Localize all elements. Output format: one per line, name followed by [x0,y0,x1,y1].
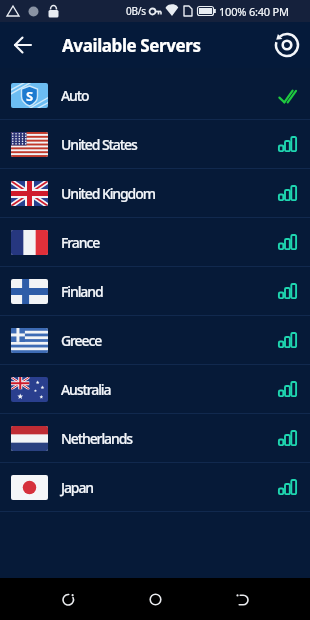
staticText: France [61,233,100,252]
staticText: S [26,87,34,105]
staticText: Netherlands [61,429,132,448]
staticText: United Kingdom [61,184,155,203]
button[interactable]: Netherlands [0,414,310,462]
button[interactable] [264,22,310,68]
button[interactable]: Finland [0,267,310,315]
staticText: Greece [61,331,102,350]
button[interactable] [0,22,46,68]
button[interactable]: France [0,218,310,266]
staticText: Auto [61,86,89,105]
staticText: 0B/s [126,4,146,18]
button[interactable] [24,578,112,620]
button[interactable]: United States [0,120,310,168]
staticText: Finland [61,282,103,301]
button[interactable] [112,578,199,620]
button[interactable]: Japan [0,463,310,511]
staticText: Japan [61,478,94,497]
button[interactable]: S [0,71,310,119]
staticText: Available Servers [62,34,201,57]
button[interactable]: United Kingdom [0,169,310,217]
button[interactable]: Australia [0,365,310,413]
staticText: Australia [61,380,111,399]
staticText: United States [61,135,137,154]
button[interactable] [199,578,286,620]
staticText: 100% 6:40 PM [219,4,289,19]
button[interactable]: Greece [0,316,310,364]
